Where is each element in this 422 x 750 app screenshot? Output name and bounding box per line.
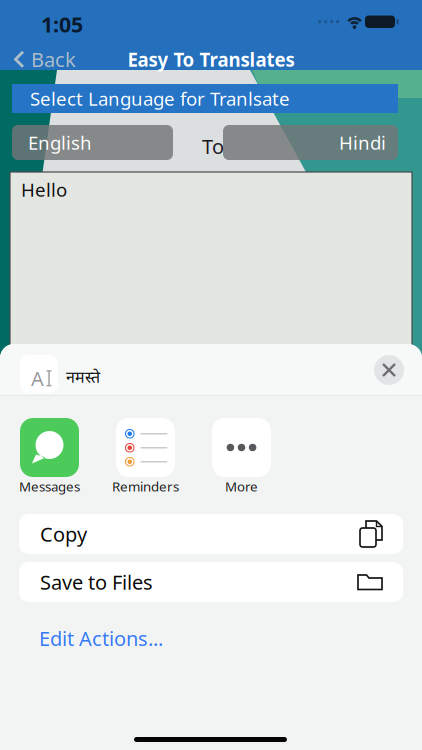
staticText: Hindi (339, 130, 386, 155)
button[interactable]: Hindi (223, 125, 398, 160)
button[interactable]: Close (374, 355, 404, 385)
staticText: More (225, 477, 258, 495)
staticText: Hello (21, 177, 67, 202)
staticText: Easy To Translates (127, 47, 294, 72)
staticText: To (202, 133, 224, 160)
staticText: 1:05 (41, 10, 83, 38)
staticText: Messages (19, 477, 80, 495)
button[interactable]: Reminders (97, 418, 193, 495)
staticText: A (31, 365, 44, 392)
staticText: Reminders (112, 477, 179, 495)
staticText: Back (31, 46, 76, 73)
button[interactable]: Edit Actions... (39, 625, 163, 652)
button[interactable]: Select Language for Tranlsate (12, 84, 398, 113)
button[interactable]: Save to Files (19, 562, 403, 602)
button[interactable]: Back (14, 46, 76, 73)
button[interactable]: Copy (19, 514, 403, 554)
staticText: Save to Files (40, 569, 153, 595)
button[interactable]: More (193, 418, 289, 495)
button[interactable]: Messages (1, 418, 97, 495)
staticText: English (28, 130, 92, 155)
staticText: नमस्ते (66, 366, 100, 387)
button[interactable]: English (12, 125, 173, 160)
staticText: Copy (40, 521, 87, 547)
staticText: Edit Actions... (39, 625, 163, 652)
staticText: Select Language for Tranlsate (30, 86, 290, 111)
